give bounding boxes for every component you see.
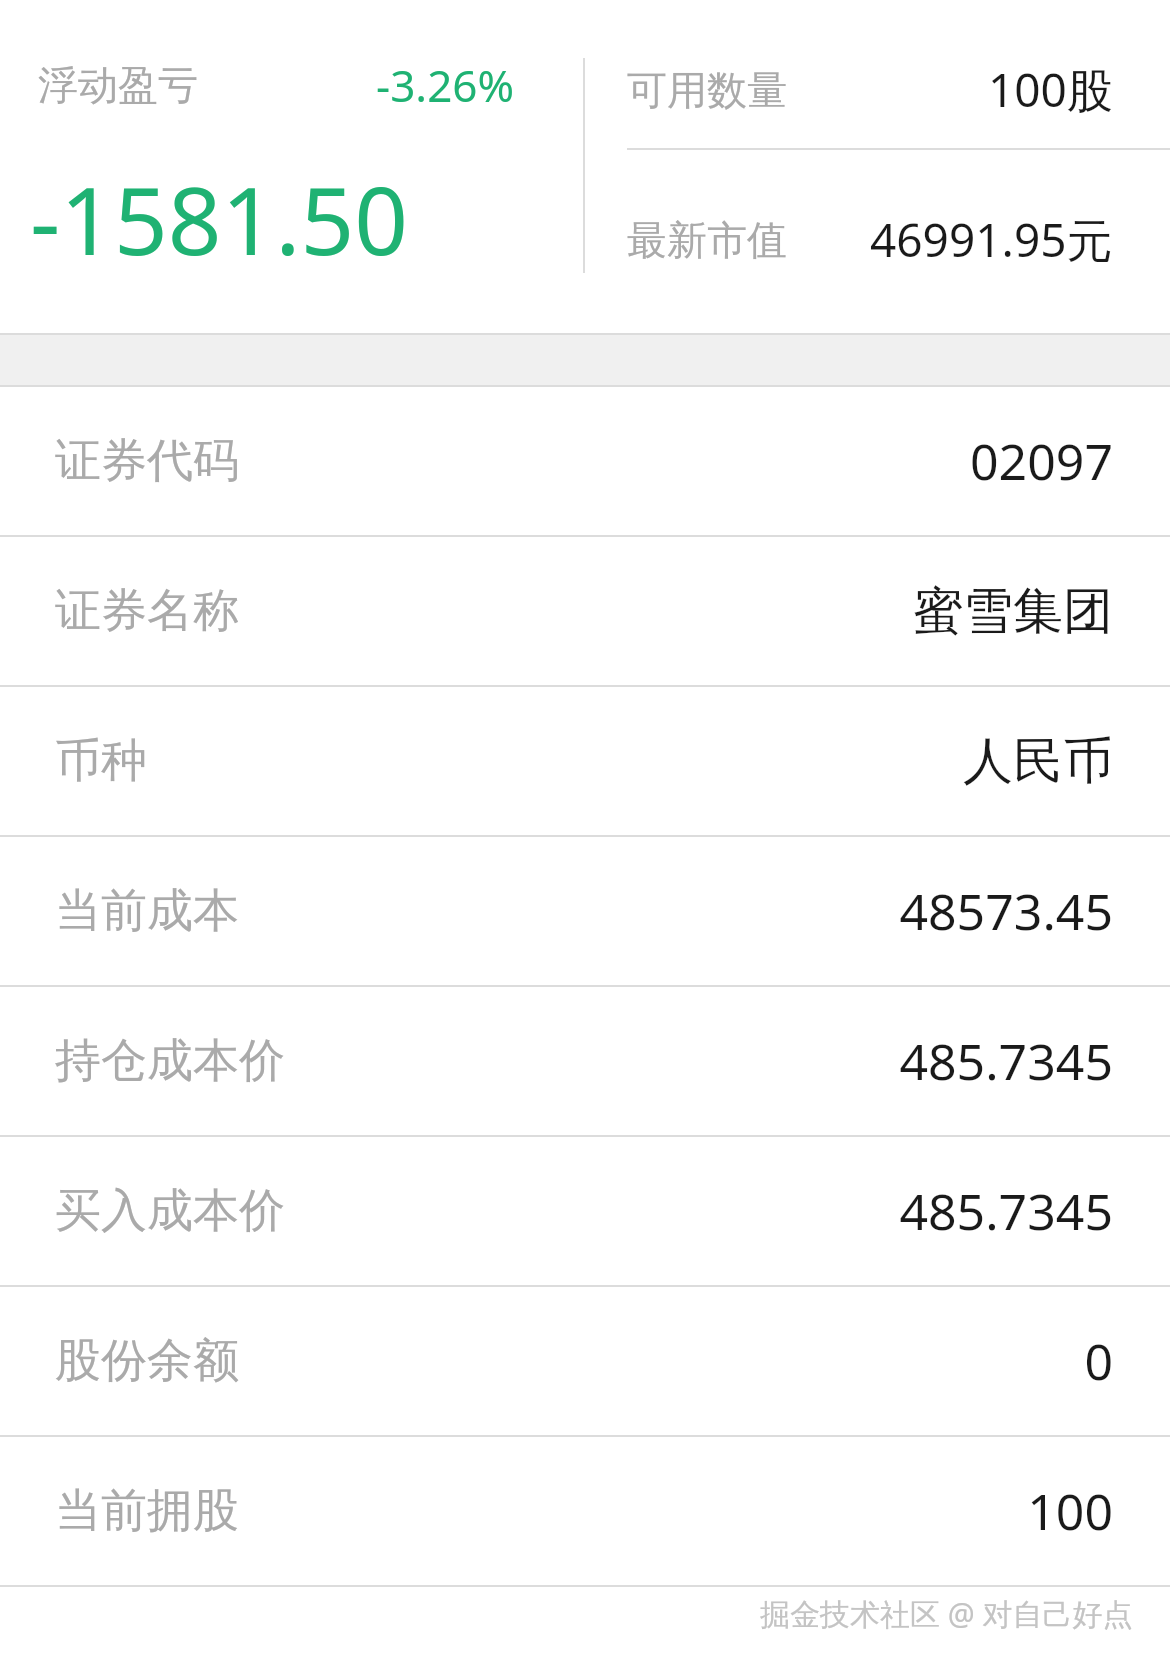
staticText: 股份余额 bbox=[55, 1332, 239, 1390]
staticText: 46991.95元 bbox=[870, 208, 1113, 271]
button[interactable]: 持仓成本价 bbox=[0, 987, 1170, 1135]
button[interactable]: 股份余额 bbox=[0, 1287, 1170, 1435]
button[interactable]: 币种 bbox=[0, 687, 1170, 835]
staticText: 证券代码 bbox=[55, 432, 239, 490]
button[interactable]: 当前成本 bbox=[0, 837, 1170, 985]
button[interactable]: 浮动盈亏 bbox=[0, 0, 583, 333]
staticText: 掘金技术社区 @ 对自己好点 bbox=[760, 1593, 1133, 1634]
staticText: 持仓成本价 bbox=[55, 1032, 285, 1090]
staticText: 人民币 bbox=[963, 730, 1113, 793]
staticText: 100股 bbox=[988, 58, 1113, 121]
staticText: 485.7345 bbox=[899, 1027, 1113, 1095]
button[interactable]: 证券代码 bbox=[0, 387, 1170, 535]
staticText: 当前成本 bbox=[55, 882, 239, 940]
button[interactable]: 证券名称 bbox=[0, 537, 1170, 685]
staticText: 证券名称 bbox=[55, 582, 239, 640]
staticText: 当前拥股 bbox=[55, 1482, 239, 1540]
staticText: 0 bbox=[1084, 1327, 1113, 1395]
staticText: 可用数量 bbox=[627, 65, 787, 115]
staticText: 02097 bbox=[970, 427, 1113, 495]
staticText: -1581.50 bbox=[30, 155, 409, 283]
button[interactable]: 可用数量 bbox=[585, 0, 1170, 333]
staticText: -3.26% bbox=[376, 55, 515, 115]
staticText: 蜜雪集团 bbox=[913, 580, 1113, 643]
staticText: 48573.45 bbox=[899, 877, 1113, 945]
staticText: 100 bbox=[1027, 1477, 1113, 1545]
staticText: 最新市值 bbox=[627, 215, 787, 265]
staticText: 币种 bbox=[55, 732, 147, 790]
button[interactable]: 买入成本价 bbox=[0, 1137, 1170, 1285]
button[interactable]: 当前拥股 bbox=[0, 1437, 1170, 1585]
staticText: 485.7345 bbox=[899, 1177, 1113, 1245]
staticText: 浮动盈亏 bbox=[38, 60, 198, 110]
staticText: 买入成本价 bbox=[55, 1182, 285, 1240]
